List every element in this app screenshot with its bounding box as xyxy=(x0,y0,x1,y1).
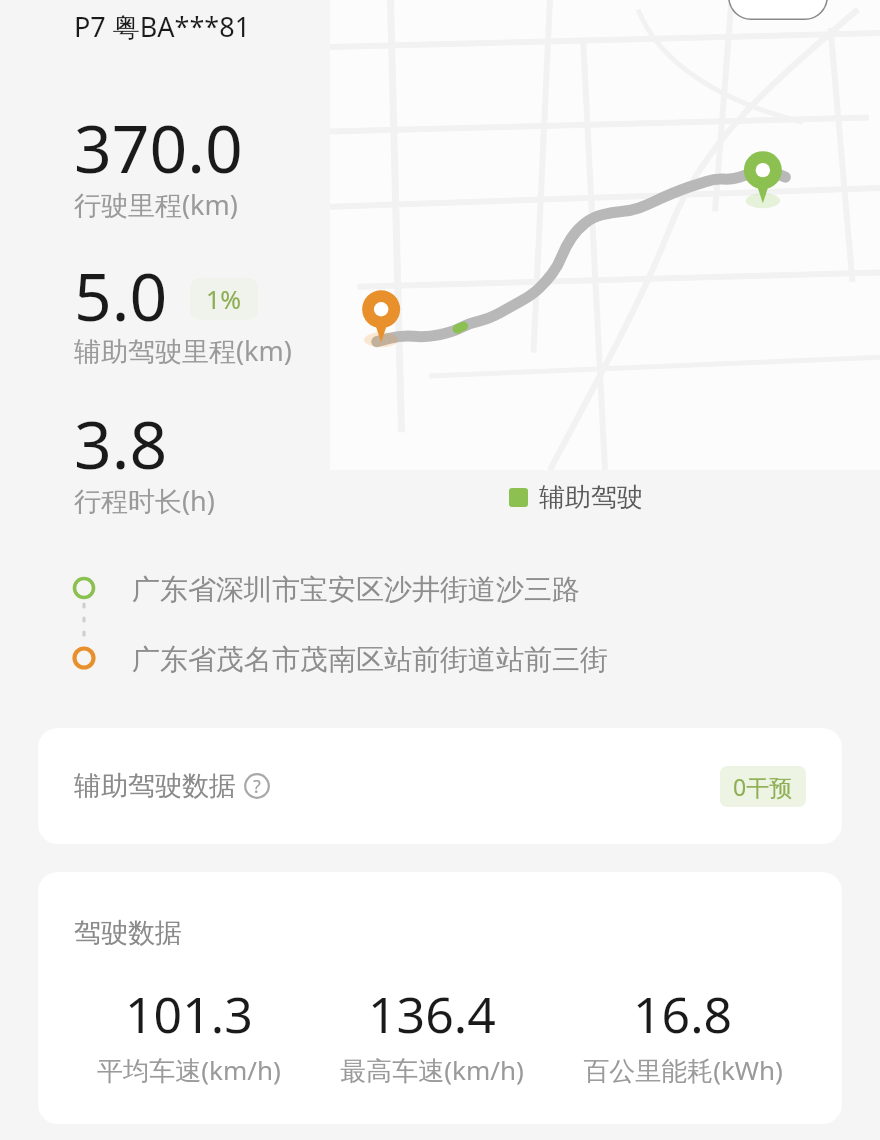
staticText: 广东省深圳市宝安区沙井街道沙三路 xyxy=(132,572,580,607)
staticText: 最高车速(km/h) xyxy=(340,1052,524,1088)
staticText: 1% xyxy=(206,282,242,316)
staticText: 广东省茂名市茂南区站前街道站前三街 xyxy=(132,642,608,677)
button[interactable]: More xyxy=(728,0,828,20)
staticText: 16.8 xyxy=(633,980,733,1048)
button[interactable]: 辅助驾驶数据 xyxy=(38,728,842,844)
staticText: P7 粤BA***81 xyxy=(74,8,251,45)
staticText: 3.8 xyxy=(74,398,168,488)
staticText: 平均车速(km/h) xyxy=(97,1052,281,1088)
staticText: 辅助驾驶数据 xyxy=(74,769,236,803)
staticText: 驾驶数据 xyxy=(74,916,182,950)
staticText: 136.4 xyxy=(368,980,496,1048)
staticText: 行程时长(h) xyxy=(74,482,215,519)
staticText: ? xyxy=(253,774,261,799)
staticText: 370.0 xyxy=(74,102,243,192)
staticText: 百公里能耗(kWh) xyxy=(583,1052,783,1088)
staticText: 101.3 xyxy=(125,980,253,1048)
staticText: 5.0 xyxy=(74,250,168,340)
staticText: 行驶里程(km) xyxy=(74,186,238,223)
button[interactable]: Help xyxy=(244,773,270,799)
staticText: 0干预 xyxy=(733,771,793,802)
button[interactable]: 驾驶数据 xyxy=(38,872,842,1124)
staticText: 辅助驾驶里程(km) xyxy=(74,332,292,369)
staticText: 辅助驾驶 xyxy=(539,481,643,514)
